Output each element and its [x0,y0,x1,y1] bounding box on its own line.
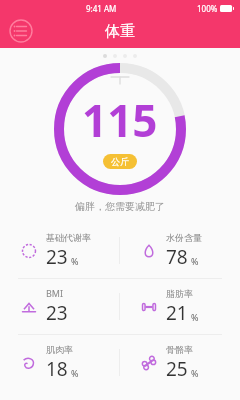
staticText: 78 [166,244,188,270]
staticText: 18 [46,356,68,382]
staticText: 基础代谢率 [46,232,91,243]
staticText: 9:41 AM [86,3,117,14]
button[interactable]: 骨骼率 [120,335,240,390]
staticText: 肌肉率 [46,344,73,355]
staticText: 水份含量 [166,232,202,243]
staticText: % [71,255,79,267]
staticText: BMI [46,287,64,299]
staticText: 23 [46,300,68,326]
staticText: 公斤 [111,156,129,167]
button[interactable]: 肌肉率 [0,335,119,390]
staticText: 100% [197,3,218,14]
button[interactable]: Menu [8,18,34,44]
staticText: 偏胖，您需要减肥了 [75,200,165,213]
staticText: % [191,255,199,267]
staticText: % [191,367,199,379]
staticText: 骨骼率 [166,344,193,355]
staticText: % [71,367,79,379]
staticText: 21 [166,300,188,326]
staticText: 115 [82,90,158,150]
staticText: 脂肪率 [166,288,193,299]
button[interactable]: 脂肪率 [120,279,240,334]
button[interactable]: 基础代谢率 [0,223,119,278]
button[interactable]: 水份含量 [120,223,240,278]
staticText: 25 [166,356,188,382]
staticText: 体重 [105,22,135,41]
staticText: 23 [46,244,68,270]
staticText: % [191,311,199,323]
button[interactable]: BMI [0,279,119,334]
